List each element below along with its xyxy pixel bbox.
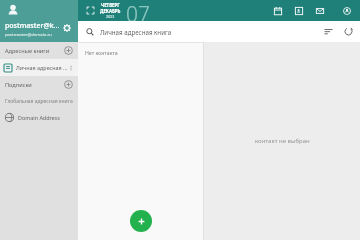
staticText: Нет контакта	[85, 49, 118, 56]
staticText: postmaster@domain.ru	[5, 32, 52, 38]
button[interactable]: Refresh	[344, 27, 353, 36]
staticText: postmaster@k...	[5, 21, 60, 31]
button[interactable]: Sort	[324, 27, 333, 36]
staticText: Domain Address Book	[18, 114, 73, 121]
staticText: ЧЕТВЕРГ	[101, 2, 120, 8]
staticText: 07	[126, 0, 150, 21]
button[interactable]: Личная адресная ...	[4, 59, 74, 76]
button[interactable]: Settings	[61, 22, 73, 34]
button[interactable]: Contacts	[294, 6, 304, 16]
button[interactable]: Подписки	[5, 76, 73, 93]
staticText: Подписки	[5, 81, 32, 89]
button[interactable]: Add contact	[130, 210, 152, 232]
button[interactable]: Mail	[315, 6, 325, 16]
other: Add	[64, 46, 73, 55]
button[interactable]: Адресные книги	[5, 42, 73, 59]
staticText: Личная адресная книга	[100, 28, 172, 36]
staticText: ДЕКАБРЬ	[100, 8, 121, 14]
staticText: Глобальная адресная книга	[5, 98, 73, 105]
button[interactable]: Domain Address Book	[5, 109, 73, 126]
staticText: 2023	[106, 14, 115, 19]
staticText: контакт не выбран	[255, 137, 310, 145]
other: Add	[64, 80, 73, 89]
button[interactable]: Search	[86, 28, 94, 36]
staticText: Адресные книги	[5, 47, 50, 55]
button[interactable]: Account	[342, 6, 352, 16]
staticText: Личная адресная ...	[16, 64, 68, 71]
other: More options	[68, 64, 74, 72]
button[interactable]: Calendar	[273, 6, 283, 16]
button[interactable]: postmaster@k...	[0, 0, 78, 42]
other: Expand	[87, 7, 94, 14]
